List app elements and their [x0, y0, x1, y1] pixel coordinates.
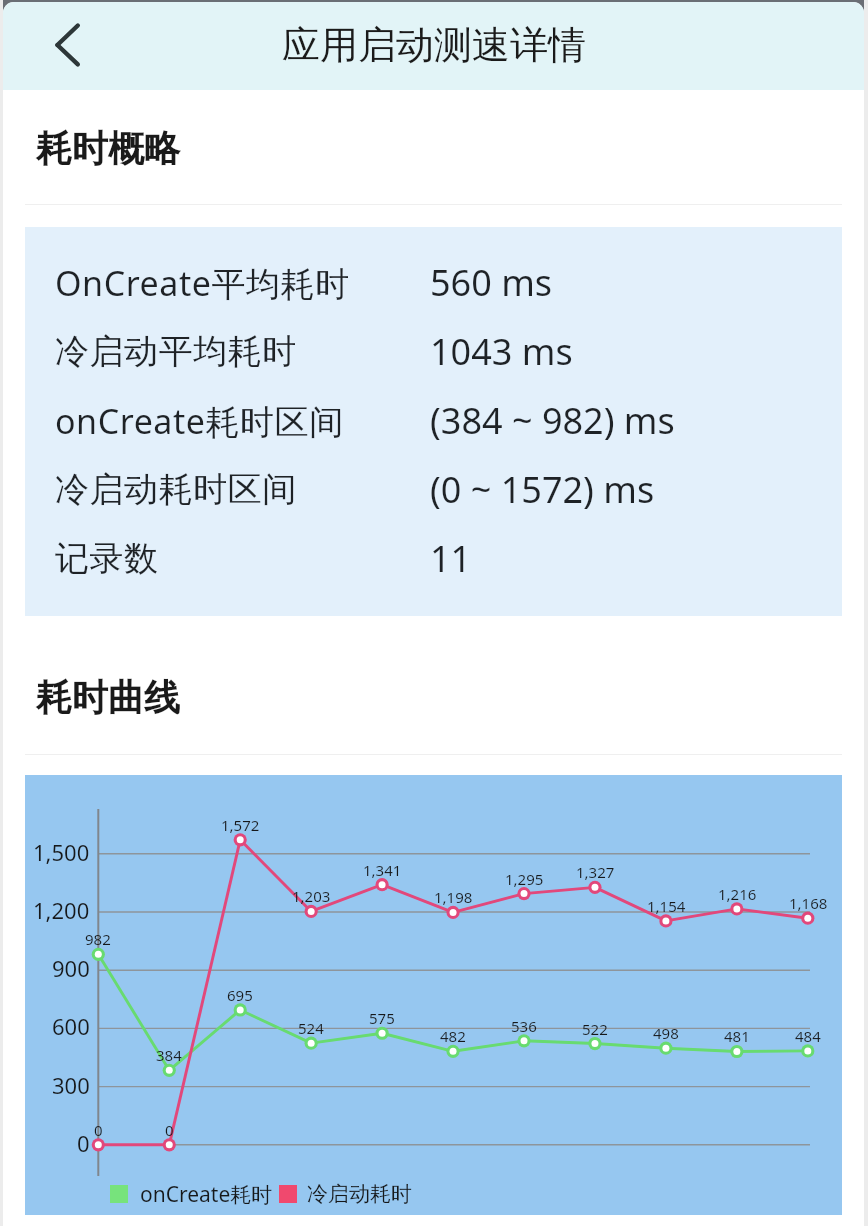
- staticText: 0: [165, 1120, 174, 1140]
- staticText: 0: [77, 1128, 90, 1158]
- staticText: 冷启动耗时区间: [55, 468, 428, 511]
- staticText: 536: [511, 1016, 537, 1036]
- staticText: 冷启动耗时: [307, 1181, 412, 1207]
- staticText: 482: [440, 1026, 466, 1046]
- staticText: 575: [369, 1008, 395, 1028]
- staticText: 耗时曲线: [36, 675, 180, 720]
- staticText: 1,200: [33, 895, 90, 925]
- staticText: 522: [582, 1019, 608, 1039]
- staticText: 1,572: [221, 815, 260, 835]
- staticText: 481: [724, 1026, 750, 1046]
- staticText: 695: [227, 985, 253, 1005]
- staticText: onCreate耗时区间: [55, 398, 428, 444]
- staticText: 498: [653, 1023, 679, 1043]
- staticText: 1,154: [647, 896, 686, 916]
- staticText: 1,500: [33, 837, 90, 867]
- staticText: 524: [298, 1018, 324, 1038]
- staticText: 900: [52, 953, 90, 983]
- staticText: 1,168: [789, 893, 828, 913]
- staticText: 484: [795, 1026, 821, 1046]
- staticText: 982: [85, 929, 111, 949]
- staticText: 1,203: [292, 886, 331, 906]
- staticText: 应用启动测速详情: [282, 21, 586, 69]
- staticText: 冷启动平均耗时: [55, 330, 428, 373]
- staticText: (0 ~ 1572) ms: [430, 465, 655, 514]
- staticText: 1,216: [718, 884, 757, 904]
- button[interactable]: onCreate耗时区间: [25, 387, 842, 454]
- button[interactable]: OnCreate平均耗时: [25, 249, 842, 316]
- button[interactable]: Back: [3, 2, 113, 90]
- staticText: 300: [52, 1070, 90, 1100]
- staticText: onCreate耗时: [140, 1180, 273, 1209]
- staticText: 1,341: [363, 860, 402, 880]
- staticText: 记录数: [55, 537, 428, 580]
- staticText: 1,295: [505, 869, 544, 889]
- staticText: 1,198: [434, 887, 473, 907]
- button[interactable]: 记录数: [25, 525, 842, 592]
- staticText: 600: [52, 1011, 90, 1041]
- staticText: 0: [94, 1120, 103, 1140]
- staticText: 1043 ms: [430, 327, 573, 376]
- staticText: 560 ms: [430, 258, 553, 307]
- staticText: 耗时概略: [36, 126, 180, 171]
- staticText: 1,327: [576, 862, 615, 882]
- staticText: 11: [430, 534, 472, 583]
- staticText: 384: [156, 1045, 182, 1065]
- button[interactable]: 冷启动耗时区间: [25, 456, 842, 523]
- staticText: OnCreate平均耗时: [55, 260, 428, 306]
- button[interactable]: 冷启动平均耗时: [25, 318, 842, 385]
- staticText: (384 ~ 982) ms: [430, 396, 675, 445]
